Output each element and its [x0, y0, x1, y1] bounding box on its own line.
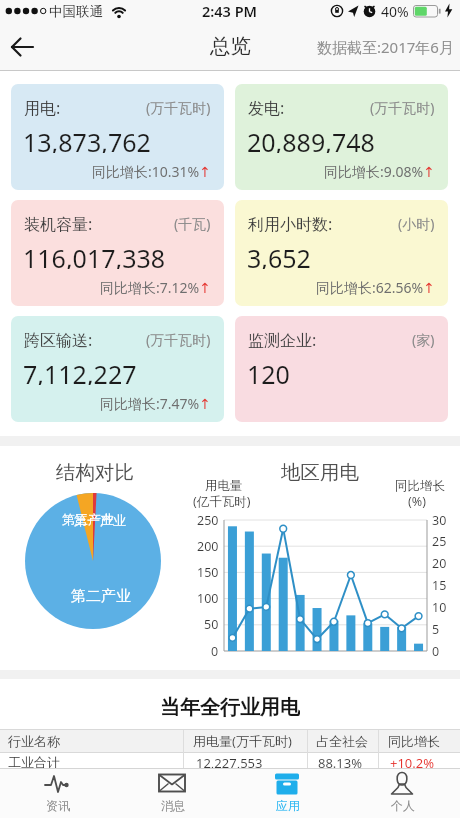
staticText: 5 [432, 621, 440, 637]
staticText: 第二产业 [71, 587, 131, 604]
staticText: 25 [432, 533, 447, 549]
staticText: 同比增长 [395, 478, 445, 493]
staticText: (家) [412, 330, 435, 348]
staticText: 12,227,553 [196, 754, 263, 770]
staticText: 200 [197, 538, 219, 554]
staticText: 中国联通 [49, 3, 103, 20]
staticText: 同比增长:7.12%↑ [100, 278, 211, 297]
staticText: 20,889,748 [247, 125, 375, 153]
button[interactable] [6, 32, 40, 62]
staticText: 当年全行业用电 [160, 695, 300, 719]
staticText: 20 [432, 555, 447, 571]
staticText: 总览 [210, 33, 251, 59]
staticText: 个人 [391, 798, 415, 813]
staticText: 结构对比 [56, 460, 134, 484]
button[interactable] [11, 200, 224, 306]
staticText: 50 [204, 616, 219, 632]
staticText: 120 [247, 357, 290, 385]
staticText: 数据截至:2017年6月 [317, 37, 454, 57]
staticText: 第三产业 [62, 511, 114, 527]
staticText: 同比增长:10.31%↑ [92, 162, 211, 181]
staticText: 0 [432, 643, 440, 659]
staticText: 用电量(万千瓦时) [193, 732, 292, 750]
button[interactable] [11, 84, 224, 190]
staticText: 250 [197, 512, 219, 528]
staticText: 工业合计 [8, 754, 60, 770]
staticText: 15 [432, 577, 447, 593]
staticText: (小时) [398, 214, 435, 232]
staticText: 30 [432, 512, 447, 528]
staticText: (万千瓦时) [146, 98, 211, 116]
staticText: 资讯 [46, 798, 70, 813]
button[interactable] [345, 769, 460, 818]
button[interactable] [11, 316, 224, 422]
staticText: 2:43 PM [202, 1, 258, 21]
staticText: 用电量 [205, 478, 243, 493]
staticText: 同比增长:9.08%↑ [324, 162, 435, 181]
staticText: 地区用电 [281, 460, 359, 484]
staticText: 占全社会 [316, 733, 368, 749]
staticText: 100 [197, 590, 219, 606]
staticText: 应用 [276, 798, 300, 813]
staticText: 同比增长 [388, 733, 440, 749]
staticText: 消息 [161, 798, 185, 813]
staticText: 用电: [24, 97, 61, 116]
staticText: 行业名称 [8, 733, 60, 749]
staticText: 10 [432, 599, 447, 615]
staticText: 13,873,762 [23, 125, 151, 153]
button[interactable] [235, 200, 448, 306]
staticText: (亿千瓦时) [193, 493, 251, 508]
staticText: 利用小时数: [248, 213, 333, 232]
staticText: +10.2% [390, 754, 435, 770]
button[interactable] [235, 316, 448, 422]
button[interactable] [0, 769, 115, 818]
button[interactable] [230, 769, 345, 818]
staticText: 7,112,227 [23, 357, 137, 385]
button[interactable] [115, 769, 230, 818]
staticText: 同比增长:7.47%↑ [100, 394, 211, 413]
staticText: 3,652 [247, 241, 311, 269]
staticText: (万千瓦时) [370, 98, 435, 116]
staticText: 跨区输送: [24, 329, 93, 348]
staticText: (%) [408, 493, 426, 508]
staticText: 同比增长:62.56%↑ [316, 278, 435, 297]
staticText: 装机容量: [24, 213, 93, 232]
button[interactable] [235, 84, 448, 190]
staticText: (千瓦) [174, 214, 211, 232]
staticText: 监测企业: [248, 329, 317, 348]
staticText: 150 [197, 564, 219, 580]
staticText: 88.13% [318, 754, 363, 770]
staticText: (万千瓦时) [146, 330, 211, 348]
staticText: 40% [381, 2, 409, 21]
staticText: 0 [211, 643, 219, 659]
staticText: 116,017,338 [23, 241, 166, 269]
staticText: 发电: [248, 97, 285, 116]
staticText: 第一产业 [74, 512, 126, 528]
